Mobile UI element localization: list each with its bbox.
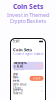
staticText: Invest	[32, 77, 40, 80]
button[interactable]: Metaverse & AI	[12, 62, 43, 70]
staticText: Coin Sets	[13, 2, 43, 11]
button[interactable]: DeFi Blue Chips	[11, 84, 45, 89]
staticText: Invest in Themed	[7, 11, 49, 18]
staticText: Coin Sets	[13, 47, 32, 52]
staticText: Metaverse & AI	[14, 61, 27, 68]
staticText: >	[41, 85, 43, 88]
staticText: Gaming Tokens	[13, 88, 23, 95]
staticText: DeFi Blue Chips	[13, 83, 27, 90]
staticText: >	[41, 90, 43, 93]
staticText: 5 coins +12.4%	[14, 69, 24, 71]
button[interactable]: Top Gainers	[11, 75, 45, 82]
staticText: 8 coins	[13, 83, 18, 85]
staticText: 9:41	[13, 40, 20, 43]
button[interactable]: Gaming Tokens	[11, 89, 45, 94]
staticText: Top Gainers	[13, 72, 19, 82]
staticText: Crypto Baskets	[9, 17, 46, 24]
staticText: Curated crypto baskets	[13, 52, 43, 56]
